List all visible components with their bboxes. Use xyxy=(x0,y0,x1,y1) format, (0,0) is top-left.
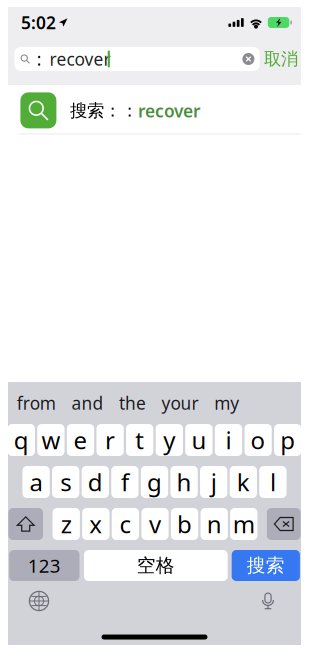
button[interactable]: h xyxy=(170,466,198,498)
button[interactable]: c xyxy=(112,508,139,540)
staticText: s xyxy=(60,466,71,498)
button[interactable]: 123 xyxy=(9,550,79,581)
staticText: k xyxy=(237,466,250,498)
staticText: and xyxy=(71,391,103,414)
button[interactable]: r xyxy=(96,424,124,456)
staticText: 搜索 xyxy=(247,554,285,577)
staticText: d xyxy=(88,466,103,498)
button[interactable]: i xyxy=(215,424,242,456)
button[interactable]: Dictate xyxy=(252,585,284,617)
staticText: z xyxy=(61,508,72,540)
staticText: t xyxy=(135,424,144,456)
button[interactable]: e xyxy=(67,424,94,456)
staticText: p xyxy=(280,424,295,456)
button[interactable]: m xyxy=(230,508,257,540)
staticText: from xyxy=(17,391,56,414)
button[interactable]: u xyxy=(185,424,212,456)
staticText: 5:02 xyxy=(21,11,56,34)
staticText: l xyxy=(270,466,276,498)
button[interactable]: w xyxy=(37,424,64,456)
button[interactable]: x xyxy=(82,508,109,540)
staticText: my xyxy=(214,391,239,414)
staticText: a xyxy=(30,466,43,498)
button[interactable]: from xyxy=(9,382,64,424)
button[interactable]: Switch keyboard xyxy=(23,585,55,617)
button[interactable]: l xyxy=(259,466,286,498)
staticText: j xyxy=(211,466,217,498)
button[interactable]: s xyxy=(52,466,79,498)
staticText: m xyxy=(233,508,255,540)
button[interactable]: p xyxy=(274,424,301,456)
button[interactable]: n xyxy=(201,508,228,540)
button[interactable]: Delete xyxy=(267,508,301,540)
button[interactable]: y xyxy=(156,424,183,456)
staticText: : xyxy=(37,47,42,70)
button[interactable]: q xyxy=(8,424,35,456)
staticText: 搜索： xyxy=(70,100,121,121)
button[interactable]: z xyxy=(52,508,80,540)
button[interactable]: the xyxy=(111,382,154,424)
button[interactable]: 搜索 xyxy=(232,550,300,581)
button[interactable]: 空格 xyxy=(84,550,228,581)
staticText: 空格 xyxy=(137,554,175,577)
staticText: v xyxy=(149,508,161,540)
staticText: w xyxy=(41,424,60,456)
staticText: b xyxy=(177,508,192,540)
staticText: u xyxy=(191,424,206,456)
staticText: f xyxy=(121,466,129,498)
staticText: r xyxy=(105,424,115,456)
button[interactable]: 取消 xyxy=(262,47,300,71)
staticText: your xyxy=(162,391,199,414)
button[interactable]: f xyxy=(111,466,138,498)
button[interactable]: v xyxy=(141,508,169,540)
staticText: h xyxy=(177,466,192,498)
button[interactable]: j xyxy=(200,466,227,498)
staticText: g xyxy=(147,466,162,498)
staticText: 取消 xyxy=(264,48,298,70)
staticText: x xyxy=(89,508,102,540)
button[interactable]: b xyxy=(171,508,198,540)
staticText: q xyxy=(14,424,29,456)
button[interactable]: a xyxy=(22,466,50,498)
button[interactable]: t xyxy=(126,424,153,456)
staticText: o xyxy=(251,424,266,456)
staticText: n xyxy=(207,508,222,540)
button[interactable]: k xyxy=(230,466,257,498)
staticText: i xyxy=(225,424,231,456)
button[interactable]: my xyxy=(206,382,247,424)
button[interactable]: 搜索： xyxy=(8,85,301,134)
staticText: y xyxy=(163,424,175,456)
staticText: recover xyxy=(138,99,201,122)
staticText: recover xyxy=(49,47,110,70)
staticText: 123 xyxy=(28,553,61,578)
staticText: c xyxy=(119,508,131,540)
button[interactable]: g xyxy=(141,466,168,498)
button[interactable]: your xyxy=(154,382,206,424)
staticText: ： xyxy=(121,100,138,121)
button[interactable]: and xyxy=(64,382,111,424)
button[interactable]: d xyxy=(82,466,109,498)
button[interactable]: Clear text xyxy=(237,47,259,71)
staticText: e xyxy=(73,424,87,456)
staticText: the xyxy=(119,391,146,414)
button[interactable]: Shift xyxy=(8,508,43,540)
button[interactable]: o xyxy=(244,424,272,456)
